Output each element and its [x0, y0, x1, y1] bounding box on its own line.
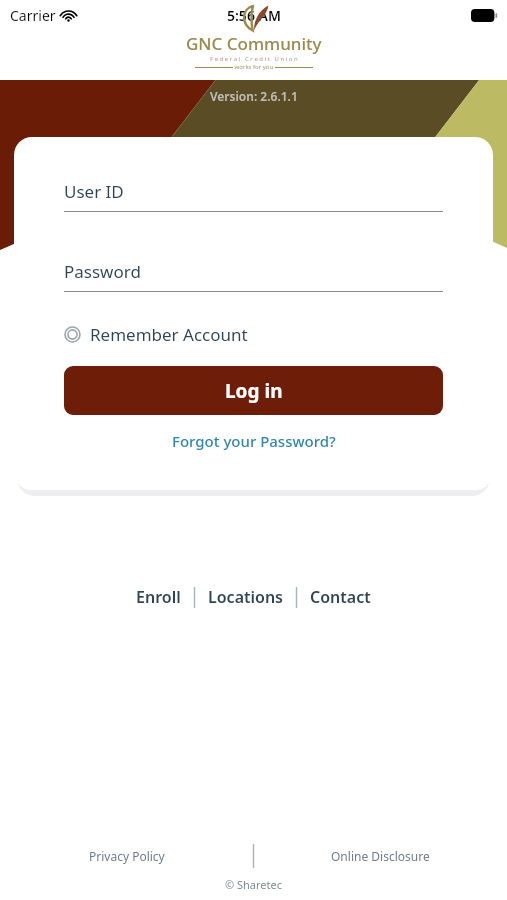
staticText: User ID	[64, 180, 124, 203]
button[interactable]: Enroll	[123, 586, 194, 608]
staticText: Version: 2.6.1.1	[210, 88, 298, 104]
button[interactable]: Privacy Policy	[0, 848, 253, 864]
button[interactable]: User ID	[64, 180, 443, 212]
button[interactable]: Contact	[297, 586, 384, 608]
staticText: 5:56 AM	[227, 6, 281, 25]
staticText: Forgot your Password?	[172, 431, 336, 451]
button[interactable]: Remember Account	[64, 323, 443, 346]
button[interactable]: Password	[64, 260, 443, 292]
staticText: Log in	[225, 378, 283, 404]
staticText: © Sharetec	[225, 877, 283, 892]
staticText: Password	[64, 260, 141, 283]
staticText: GNC Community	[186, 32, 322, 55]
button[interactable]: Online Disclosure	[254, 848, 507, 864]
staticText: Privacy Policy	[89, 848, 165, 864]
staticText: Carrier	[10, 6, 56, 25]
staticText: F e d e r a l C r e d i t U n i o n	[210, 55, 298, 63]
staticText: Locations	[208, 586, 283, 608]
button[interactable]: Locations	[195, 586, 296, 608]
button[interactable]: Log in	[64, 366, 443, 415]
staticText: works for you	[233, 63, 275, 71]
button[interactable]: Forgot your Password?	[172, 431, 336, 451]
staticText: Online Disclosure	[331, 848, 430, 864]
staticText: Remember Account	[90, 323, 248, 346]
staticText: Contact	[310, 586, 371, 608]
staticText: Enroll	[136, 586, 181, 608]
